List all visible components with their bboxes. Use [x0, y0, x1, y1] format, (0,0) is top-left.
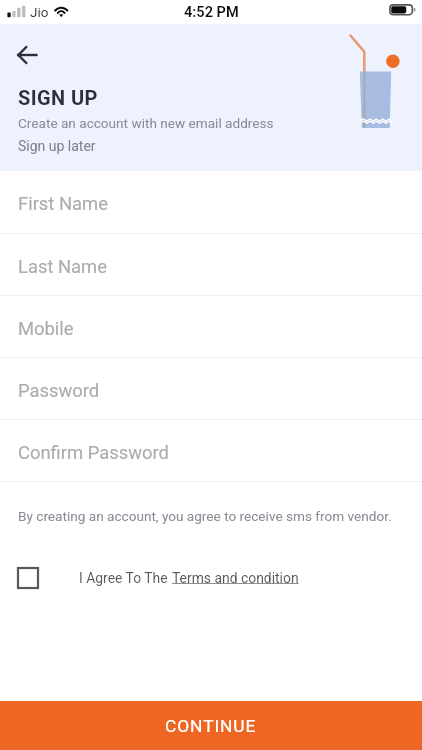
button[interactable]: Mobile	[0, 296, 422, 358]
staticText: Mobile	[18, 318, 74, 340]
staticText: Create an account with new email address	[18, 115, 274, 131]
staticText: Jio	[30, 4, 49, 20]
staticText: 4:52 PM	[184, 3, 239, 20]
button[interactable]: Confirm Password	[0, 420, 422, 482]
staticText: By creating an account, you agree to rec…	[18, 508, 392, 524]
staticText: Last Name	[18, 256, 107, 278]
button[interactable]: I Agree To The	[79, 570, 299, 586]
staticText: Terms and condition	[172, 570, 299, 586]
button[interactable]: First Name	[0, 171, 422, 234]
staticText: Confirm Password	[18, 442, 169, 464]
button[interactable]: I agree to terms checkbox	[18, 568, 38, 588]
staticText: SIGN UP	[18, 86, 98, 109]
button[interactable]: CONTINUE	[0, 701, 422, 750]
button[interactable]: Password	[0, 358, 422, 420]
button[interactable]: Last Name	[0, 234, 422, 296]
staticText: First Name	[18, 193, 108, 215]
staticText: Password	[18, 380, 100, 402]
button[interactable]: Back	[13, 41, 41, 69]
staticText: I Agree To The	[79, 570, 172, 586]
button[interactable]: Sign up later	[18, 138, 96, 154]
staticText: CONTINUE	[165, 716, 257, 736]
